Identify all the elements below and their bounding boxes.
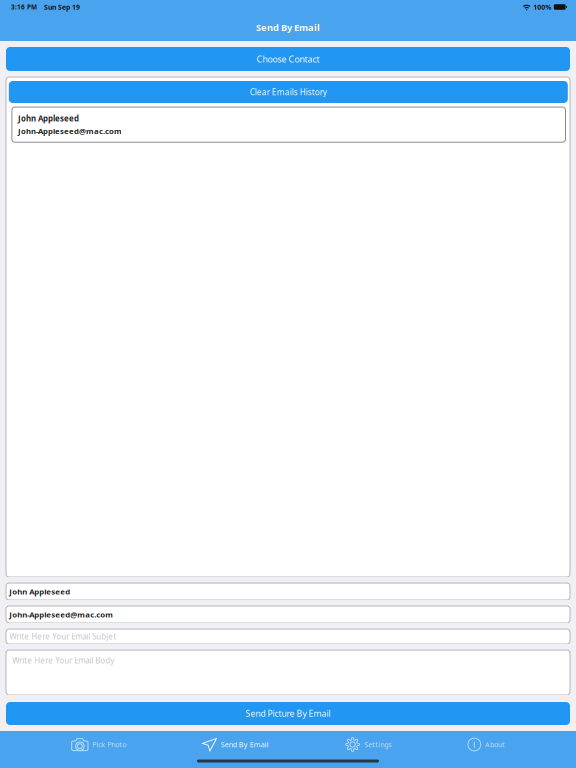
button[interactable]: John Appleseed — [12, 107, 565, 142]
button[interactable]: Write Here Your Email Body — [6, 650, 570, 695]
button[interactable]: Send By Email — [202, 737, 269, 751]
staticText: Choose Contact — [256, 53, 319, 65]
staticText: John-Appleseed@mac.com — [18, 126, 122, 136]
staticText: John Appleseed — [9, 586, 70, 597]
staticText: Write Here Your Email Subjet — [9, 631, 116, 642]
staticText: Send By Email — [221, 740, 269, 749]
staticText: 3:16 PM — [11, 3, 37, 11]
button[interactable]: About — [467, 737, 505, 751]
button[interactable]: Send Picture By Email — [6, 702, 570, 725]
staticText: Clear Emails History — [250, 86, 327, 98]
staticText: About — [485, 740, 505, 749]
staticText: Send Picture By Email — [245, 708, 330, 719]
staticText: Send By Email — [256, 21, 320, 34]
button[interactable]: Choose Contact — [6, 47, 570, 71]
staticText: 100% — [533, 2, 551, 12]
staticText: John-Appleseed@mac.com — [9, 609, 113, 620]
staticText: Write Here Your Email Body — [12, 655, 114, 666]
button[interactable]: Clear Emails History — [9, 81, 568, 103]
staticText: Sun Sep 19 — [44, 2, 80, 12]
button[interactable]: Settings — [344, 737, 391, 751]
button[interactable]: John-Appleseed@mac.com — [6, 606, 570, 623]
staticText: Pick Photo — [92, 740, 126, 749]
staticText: John Appleseed — [18, 113, 79, 124]
button[interactable]: Pick Photo — [71, 737, 126, 751]
staticText: Settings — [364, 740, 391, 749]
button[interactable]: Write Here Your Email Subjet — [6, 629, 570, 644]
button[interactable]: John Appleseed — [6, 583, 570, 600]
